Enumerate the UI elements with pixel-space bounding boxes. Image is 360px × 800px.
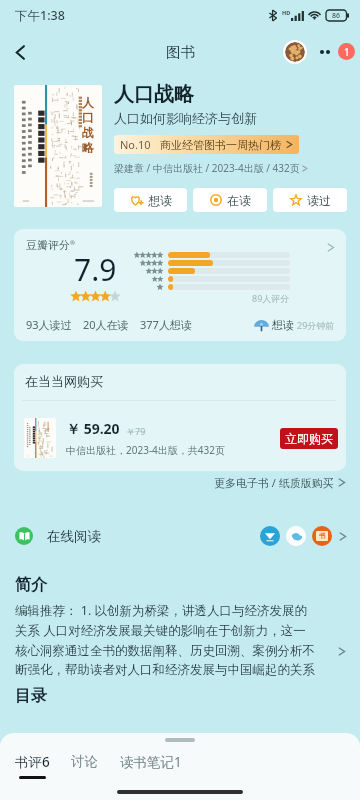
staticText: 更多电子书 / 纸质版购买 (214, 475, 334, 490)
button[interactable]: 读过 (273, 188, 347, 212)
staticText: 想读 (148, 193, 172, 208)
button[interactable]: More options (318, 33, 356, 71)
staticText: 在当当网购买 (25, 373, 103, 389)
staticText: 略 (82, 140, 94, 155)
staticText: 在线阅读 (47, 528, 101, 545)
staticText: 书 (319, 532, 326, 540)
button[interactable]: Profile (283, 40, 307, 64)
staticText: 人口如何影响经济与创新 (114, 110, 257, 126)
staticText: 梁建章 / 中信出版社 / 2023-4出版 / 432页 (114, 161, 300, 175)
staticText: 书评6 (15, 753, 50, 771)
button[interactable]: 立即购买 (280, 428, 338, 449)
staticText: 377人想读 (140, 317, 192, 332)
staticText: 战 (82, 125, 94, 140)
staticText: 20人在读 (83, 317, 129, 332)
staticText: 立即购买 (285, 431, 333, 446)
staticText: 29分钟前 (297, 319, 335, 331)
button[interactable]: 豆瓣评分 (14, 229, 346, 341)
staticText: 想读 (272, 318, 294, 332)
staticText: 简介 (15, 575, 47, 595)
staticText: 目录 (15, 686, 47, 706)
staticText: 编辑推荐： 1. 以创新为桥梁，讲透人口与经济发展的关系 人口对经济发展最关键的… (15, 602, 316, 677)
staticText: ￥79 (126, 425, 146, 437)
staticText: HD (282, 9, 291, 16)
staticText: 86 (332, 11, 341, 21)
staticText: 商业经管图书一周热门榜 (160, 138, 281, 152)
button[interactable]: 想读 (114, 188, 187, 212)
staticText: 93人读过 (26, 317, 72, 332)
button[interactable]: 讨论 (71, 753, 98, 770)
staticText: 口 (82, 110, 94, 125)
button[interactable]: 更多电子书 / 纸质版购买 (214, 475, 346, 490)
button[interactable]: 在读 (193, 188, 267, 212)
staticText: No.10 (120, 137, 151, 152)
staticText: 1 (344, 45, 350, 59)
staticText: 下午1:38 (15, 7, 65, 24)
staticText: 在读 (227, 193, 251, 208)
staticText: 读过 (307, 193, 331, 208)
staticText: 89人评分 (252, 292, 290, 304)
button[interactable]: 在线阅读 (15, 513, 347, 559)
staticText: 人口战略 (114, 82, 194, 107)
button[interactable]: Back (2, 34, 38, 70)
staticText: 豆瓣评分 (26, 238, 70, 252)
staticText: 图书 (166, 43, 195, 61)
staticText: 人 (82, 95, 94, 110)
button[interactable]: No.10 (114, 135, 299, 154)
staticText: 7.9 (74, 249, 117, 290)
staticText: 中信出版社，2023-4出版，共432页 (66, 443, 225, 457)
staticText: ® (70, 239, 75, 247)
button[interactable]: 读书笔记1 (120, 753, 182, 771)
staticText: ￥ 59.20 (66, 419, 120, 438)
